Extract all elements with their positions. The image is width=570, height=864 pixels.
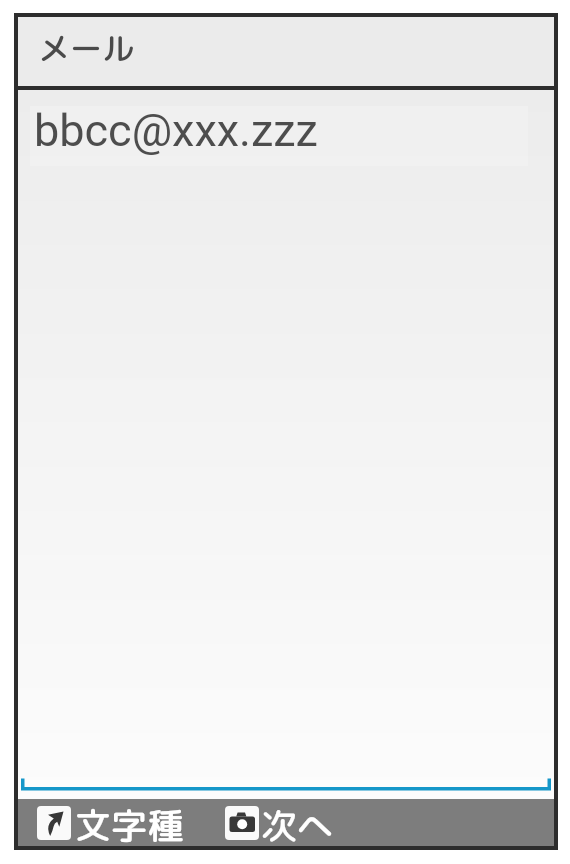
button[interactable]: bbcc@xxx.zzz bbox=[18, 90, 554, 799]
staticText: 文字種 bbox=[75, 800, 184, 847]
staticText: 次へ bbox=[261, 800, 334, 847]
button[interactable]: 次へ bbox=[225, 799, 334, 846]
button[interactable]: 文字種 bbox=[37, 799, 184, 846]
staticText: メール bbox=[38, 26, 135, 71]
staticText: bbcc@xxx.zzz bbox=[34, 104, 318, 157]
